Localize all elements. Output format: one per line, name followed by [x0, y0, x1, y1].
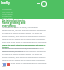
staticText: leafly	[1, 1, 10, 5]
button[interactable]: Home logo	[1, 1, 10, 5]
staticText: Lorem ipsum dolor sit amet, consectetur …	[2, 26, 47, 53]
button[interactable]: Share on Pinterest	[7, 63, 10, 66]
button[interactable]: Brand badge	[41, 1, 47, 7]
staticText: Lorem ipsum dolor sit amet, consectetur …	[2, 47, 47, 68]
button[interactable]: Share on Facebook	[3, 63, 6, 66]
staticText: How to get started growing at home today	[2, 43, 47, 49]
staticText: Everything you need to know about growin…	[2, 8, 15, 21]
staticText: An introduction to home growing and ever…	[2, 19, 30, 28]
